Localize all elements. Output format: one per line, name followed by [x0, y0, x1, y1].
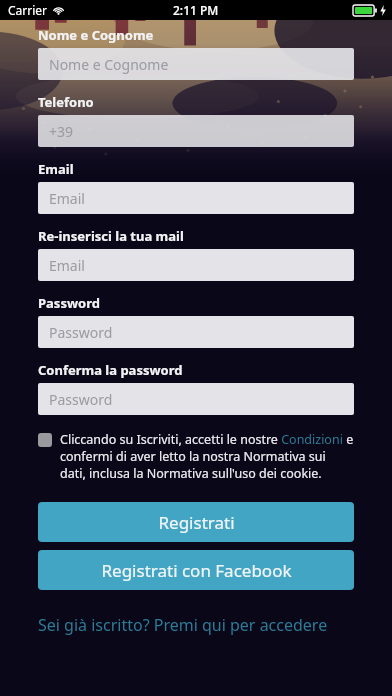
staticText: Re-inserisci la tua mail: [38, 227, 184, 245]
button[interactable]: Email: [38, 182, 354, 214]
button[interactable]: +39: [38, 115, 354, 147]
staticText: Nome e Cognome: [49, 55, 169, 74]
staticText: Email: [49, 189, 85, 208]
staticText: +39: [49, 122, 74, 141]
staticText: Password: [49, 390, 113, 409]
staticText: Conferma la password: [38, 361, 183, 379]
button[interactable]: Sei già iscritto? Premi qui per accedere: [0, 610, 392, 640]
staticText: Sei già iscritto? Premi qui per accedere: [38, 614, 328, 636]
staticText: Password: [49, 323, 113, 342]
staticText: Password: [38, 294, 100, 312]
button[interactable]: Password: [38, 316, 354, 348]
staticText: 2:11 PM: [173, 2, 219, 18]
button[interactable]: Password: [38, 383, 354, 415]
staticText: Registrati con Facebook: [101, 559, 292, 582]
staticText: Email: [38, 160, 74, 178]
button[interactable]: Email: [38, 249, 354, 281]
staticText: Carrier: [8, 2, 48, 18]
staticText: Email: [49, 256, 85, 275]
staticText: Registrati: [158, 511, 235, 534]
button[interactable]: Accetta le condizioni: [38, 433, 52, 447]
staticText: Cliccando su Iscriviti, accetti le nostr…: [60, 431, 354, 482]
button[interactable]: Registrati: [38, 502, 354, 542]
staticText: Nome e Cognome: [38, 26, 154, 44]
staticText: Telefono: [38, 93, 94, 111]
button[interactable]: Nome e Cognome: [38, 48, 354, 80]
button[interactable]: Registrati con Facebook: [38, 550, 354, 590]
